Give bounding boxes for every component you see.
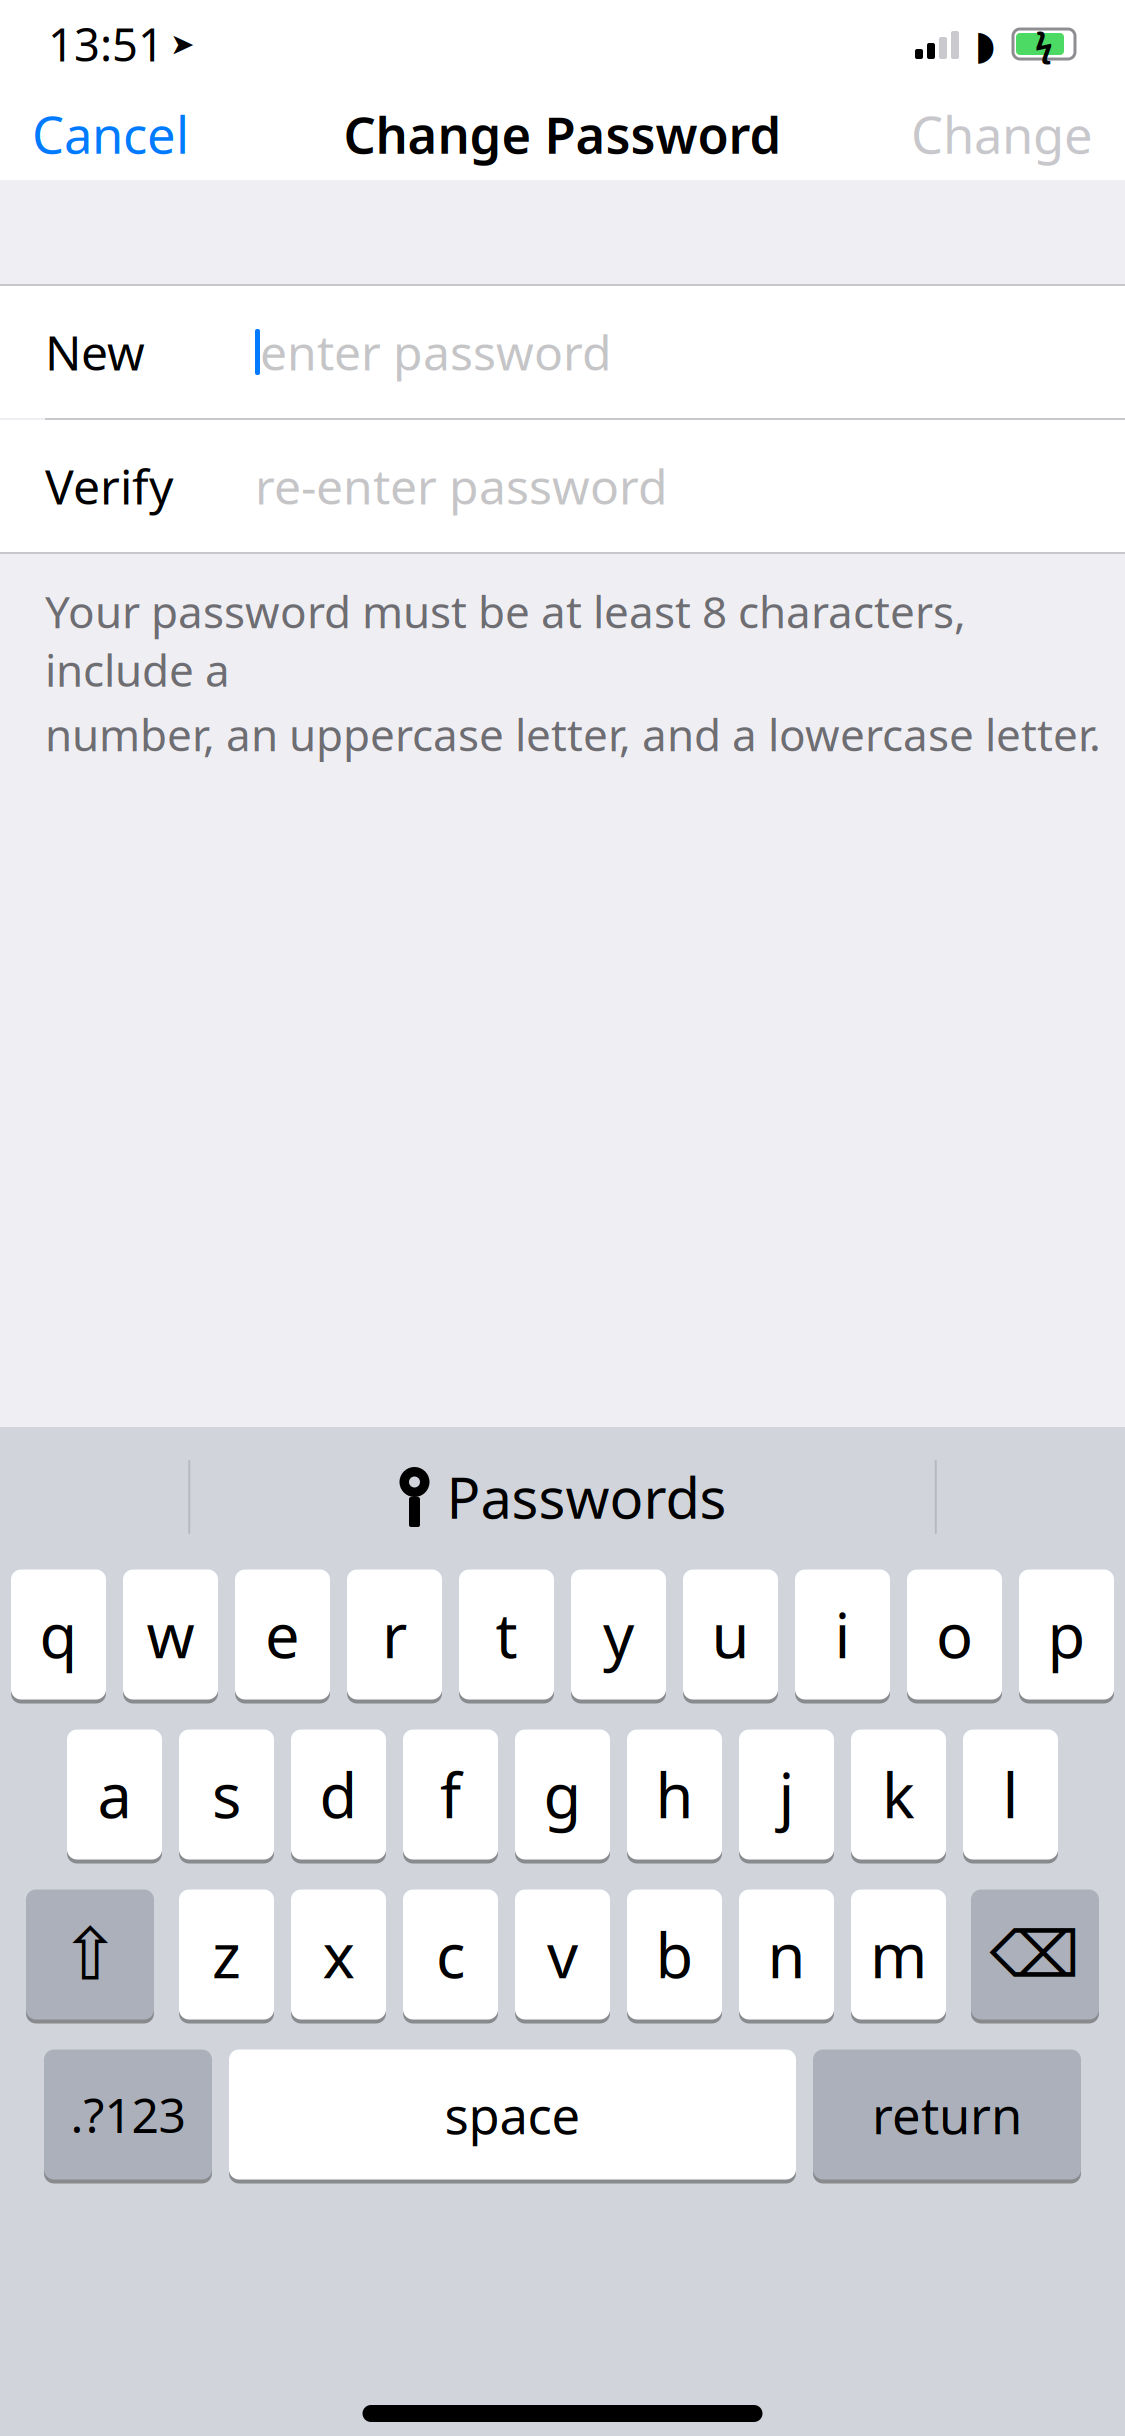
staticText: k [882,1754,915,1835]
staticText: Passwords [446,1460,726,1534]
staticText: u [711,1594,749,1675]
button[interactable]: space [229,2047,796,2182]
button[interactable]: j [739,1727,834,1862]
button[interactable]: Delete [971,1887,1099,2022]
staticText: Change Password [343,100,781,168]
staticText: ⌫ [989,1918,1080,1991]
button[interactable]: s [179,1727,274,1862]
button[interactable]: v [515,1887,610,2022]
button[interactable]: e [235,1567,330,1702]
staticText: ⇧ [60,1914,120,1995]
button[interactable]: u [683,1567,778,1702]
staticText: y [603,1594,634,1675]
staticText: t [495,1594,517,1675]
button[interactable]: m [851,1887,946,2022]
staticText: Change [911,100,1093,168]
button[interactable]: f [403,1727,498,1862]
staticText: d [319,1754,357,1835]
button[interactable]: a [67,1727,162,1862]
staticText: number, an uppercase letter, and a lower… [45,705,1101,763]
staticText: s [212,1754,241,1835]
button[interactable]: Numbers and symbols [44,2047,212,2182]
button[interactable]: k [851,1727,946,1862]
staticText: ➤ [170,27,195,61]
staticText: ϟ [1035,23,1053,65]
staticText: h [655,1754,693,1835]
button[interactable]: Change [879,82,1125,186]
staticText: z [212,1914,241,1995]
staticText: r [382,1594,407,1675]
button[interactable]: Cancel [0,82,221,186]
staticText: c [436,1914,465,1995]
staticText: n [767,1914,805,1995]
button[interactable]: d [291,1727,386,1862]
staticText: j [778,1754,794,1835]
staticText: f [440,1754,461,1835]
staticText: .?123 [70,2083,185,2146]
button[interactable]: l [963,1727,1058,1862]
staticText: Your password must be at least 8 charact… [45,582,966,699]
button[interactable]: q [11,1567,106,1702]
button[interactable]: z [179,1887,274,2022]
button[interactable]: p [1019,1567,1114,1702]
button[interactable]: b [627,1887,722,2022]
staticText: x [322,1914,354,1995]
button[interactable]: y [571,1567,666,1702]
button[interactable]: o [907,1567,1002,1702]
button[interactable]: i [795,1567,890,1702]
button[interactable]: w [123,1567,218,1702]
staticText: ◗ [974,22,995,68]
staticText: space [444,2081,580,2148]
staticText: m [870,1914,927,1995]
staticText: w [146,1594,194,1675]
button[interactable]: c [403,1887,498,2022]
staticText: enter password [260,320,612,384]
button[interactable]: New [0,286,1125,418]
staticText: 13:51 [48,14,164,74]
button[interactable]: h [627,1727,722,1862]
staticText: i [834,1594,850,1675]
button[interactable]: r [347,1567,442,1702]
staticText: return [872,2081,1022,2148]
button[interactable]: t [459,1567,554,1702]
staticText: a [97,1754,131,1835]
button[interactable]: Passwords [378,1448,746,1546]
button[interactable]: g [515,1727,610,1862]
staticText: b [655,1914,693,1995]
button[interactable]: return [813,2047,1081,2182]
staticText: e [265,1594,300,1675]
button[interactable]: n [739,1887,834,2022]
staticText: l [1002,1754,1018,1835]
staticText: q [39,1594,77,1675]
staticText: re-enter password [255,454,668,518]
button[interactable]: x [291,1887,386,2022]
staticText: Verify [45,454,173,518]
staticText: o [936,1594,973,1675]
staticText: g [543,1754,581,1835]
staticText: v [547,1914,578,1995]
button[interactable]: Shift [26,1887,154,2022]
button[interactable]: Verify [0,420,1125,552]
staticText: New [45,320,145,384]
staticText: p [1047,1594,1085,1675]
staticText: Cancel [32,100,189,168]
